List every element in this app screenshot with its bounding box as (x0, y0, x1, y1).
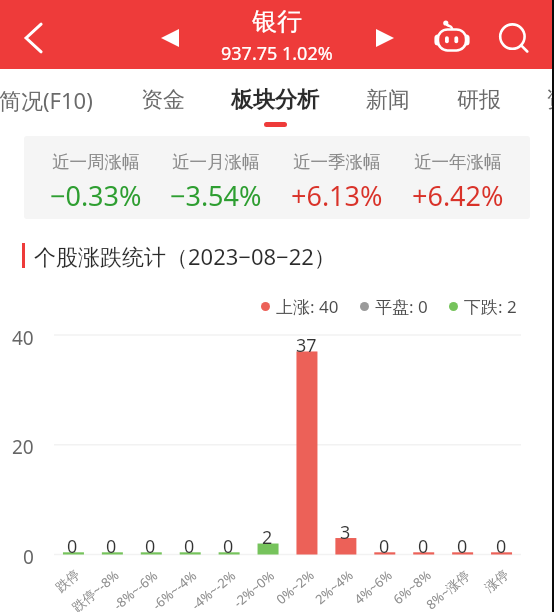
staticText: +6.42% (412, 177, 504, 214)
staticText: 2 (262, 525, 273, 550)
staticText: 0 (67, 534, 78, 559)
button[interactable]: Assistant (428, 13, 476, 61)
staticText: 3 (340, 520, 351, 545)
button[interactable]: Next (361, 14, 409, 62)
staticText: 0 (457, 534, 468, 559)
button[interactable]: 近一季涨幅 (293, 151, 381, 173)
staticText: 6%~8% (389, 566, 435, 608)
staticText: 研报 (457, 86, 501, 114)
staticText: -4%~-2% (187, 566, 240, 612)
staticText: 0 (223, 534, 234, 559)
button[interactable]: 平盘: 0 (360, 295, 428, 318)
button[interactable] (220, 69, 330, 127)
staticText: 0 (23, 544, 34, 570)
staticText: 平盘: 0 (375, 295, 428, 318)
staticText: 8%~涨停 (422, 566, 474, 612)
button[interactable] (333, 69, 443, 127)
staticText: +6.13% (291, 177, 383, 214)
staticText: 板块分析 (231, 86, 319, 114)
button[interactable]: 上涨: 40 (261, 295, 339, 318)
staticText: 银行 (252, 6, 302, 37)
staticText: 0 (145, 534, 156, 559)
button[interactable]: 下跌: 2 (449, 295, 517, 318)
button[interactable]: 近一月涨幅 (172, 151, 260, 173)
button[interactable] (0, 69, 101, 127)
staticText: 涨停 (481, 566, 511, 595)
button[interactable]: Search (489, 14, 537, 62)
button[interactable] (513, 69, 554, 127)
staticText: 新闻 (366, 86, 410, 114)
staticText: -6%~-4% (148, 566, 201, 612)
button[interactable]: 个股涨跌统计（2023−08−22） (34, 241, 336, 271)
staticText: 20 (12, 434, 34, 460)
staticText: 简况(F10) (0, 85, 93, 115)
staticText: 937.75 1.02% (221, 41, 333, 66)
staticText: 0 (184, 534, 195, 559)
staticText: -8%~-6% (109, 566, 162, 612)
staticText: 37 (296, 333, 317, 358)
staticText: 0 (379, 534, 390, 559)
staticText: 2%~4% (311, 566, 357, 608)
staticText: 4%~6% (350, 566, 396, 608)
button[interactable] (108, 69, 218, 127)
staticText: 0%~2% (272, 566, 318, 608)
staticText: 跌停~-8% (68, 566, 123, 612)
staticText: -2%~0% (229, 566, 279, 611)
staticText: 0 (496, 534, 507, 559)
staticText: 资金 (141, 86, 185, 114)
button[interactable]: 近一年涨幅 (414, 151, 502, 173)
staticText: 40 (12, 325, 34, 351)
button[interactable] (424, 69, 534, 127)
staticText: 资料 (546, 86, 554, 114)
button[interactable]: Previous (146, 14, 194, 62)
staticText: 0 (418, 534, 429, 559)
staticText: 下跌: 2 (464, 295, 517, 318)
staticText: 0 (106, 534, 117, 559)
staticText: 上涨: 40 (276, 295, 339, 318)
staticText: 跌停 (52, 566, 82, 595)
button[interactable]: Back (9, 14, 57, 62)
staticText: −0.33% (50, 177, 142, 214)
button[interactable]: 近一周涨幅 (52, 151, 140, 173)
staticText: −3.54% (170, 177, 262, 214)
